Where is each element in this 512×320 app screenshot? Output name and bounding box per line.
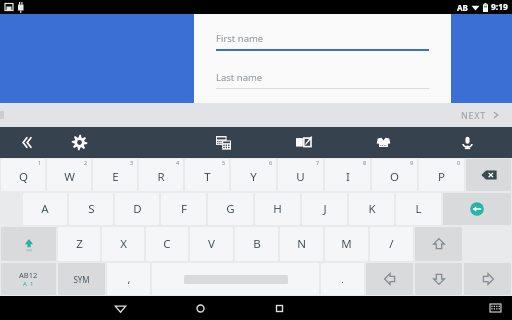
button[interactable]: 3 [93,159,137,191]
staticText: 6 [269,159,273,166]
button[interactable]: NEXT [449,105,512,125]
staticText: S [88,201,95,217]
button[interactable]: Notes [277,127,330,158]
staticText: X [120,236,127,252]
staticText: 7 [316,159,320,166]
staticText: , [127,271,131,287]
staticText: T [204,169,211,185]
button[interactable]: . [321,263,364,295]
staticText: First name [216,32,264,45]
staticText: A [41,201,49,217]
button[interactable]: Right [464,263,511,295]
button[interactable]: Recents [266,296,292,320]
button[interactable]: G [208,193,253,225]
button[interactable]: B [235,227,278,261]
button[interactable]: 6 [231,159,276,191]
staticText: 9:19 [491,1,508,13]
staticText: N [297,236,306,252]
button[interactable]: AB12 [1,263,56,295]
button[interactable]: SYM [58,263,105,295]
staticText: NEXT [461,109,486,121]
button[interactable]: N [280,227,323,261]
staticText: Last name [216,71,263,84]
staticText: 9 [410,159,414,166]
staticText: B [253,236,261,252]
button[interactable]: 9 [372,159,417,191]
button[interactable]: Hide keyboard [486,299,504,317]
staticText: F [181,201,187,217]
button[interactable]: Backspace [466,159,511,191]
staticText: SYM [73,274,90,285]
staticText: K [368,201,376,217]
staticText: R [157,169,165,185]
button[interactable]: Left [366,263,413,295]
button[interactable]: D [115,193,159,225]
button[interactable]: M [325,227,368,261]
button[interactable]: A [23,193,67,225]
staticText: J [323,201,327,217]
staticText: . [341,274,344,285]
staticText: H [273,201,282,217]
button[interactable]: K [349,193,394,225]
staticText: W [64,169,75,185]
button[interactable]: L [396,193,441,225]
staticText: 3 [130,159,134,166]
button[interactable]: Settings [50,127,108,158]
staticText: E [112,169,119,185]
button[interactable]: Z [58,227,100,261]
button[interactable]: 0 [419,159,464,191]
button[interactable]: Home [187,296,213,320]
button[interactable] [152,263,319,295]
button[interactable]: , [107,263,150,295]
staticText: Y [250,169,257,185]
staticText: D [133,201,142,217]
button[interactable]: Voice input [441,127,494,158]
staticText: C [163,236,171,252]
button[interactable]: Enter [443,193,511,225]
button[interactable]: Shift [415,227,462,261]
button[interactable]: S [69,193,113,225]
button[interactable]: Shift [1,227,56,261]
button[interactable]: C [146,227,188,261]
button[interactable]: V [190,227,233,261]
staticText: 8 [363,159,367,166]
staticText: AB [457,2,468,13]
staticText: 5 [222,159,226,166]
button[interactable]: H [255,193,300,225]
button[interactable]: Collapse [0,127,50,158]
button[interactable]: Calculator [197,127,250,158]
button[interactable]: 8 [325,159,370,191]
staticText: U [296,169,305,185]
staticText: Z [76,236,83,252]
staticText: O [390,169,399,185]
button[interactable]: J [302,193,347,225]
staticText: / [389,236,394,252]
button[interactable]: Themes [357,127,410,158]
button[interactable]: F [161,193,206,225]
staticText: Q [19,169,28,185]
staticText: 0 [457,159,461,166]
staticText: L [415,201,422,217]
button[interactable]: 2 [47,159,91,191]
button[interactable]: 4 [139,159,183,191]
staticText: G [226,201,235,217]
staticText: M [341,236,352,252]
button[interactable]: 1 [1,159,45,191]
staticText: V [208,236,215,252]
button[interactable]: Back [107,296,133,320]
staticText: AB12 [19,270,38,280]
staticText: P [438,169,445,185]
staticText: 4 [176,159,180,166]
staticText: A [23,280,27,288]
button[interactable]: 5 [185,159,229,191]
button[interactable]: 7 [278,159,323,191]
staticText: I [346,169,350,185]
staticText: 2 [84,159,88,166]
button[interactable]: Down [415,263,462,295]
staticText: 1 [38,159,42,166]
staticText: 1 [30,280,34,288]
button[interactable]: / [370,227,413,261]
button[interactable]: X [102,227,144,261]
